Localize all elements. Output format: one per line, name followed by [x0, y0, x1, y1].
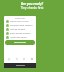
staticText: CONTINUE	[14, 41, 26, 44]
button[interactable]: Alerts	[20, 55, 27, 62]
button[interactable]: Enter phone number	[6, 31, 36, 35]
button[interactable]: CONTINUE	[5, 40, 35, 45]
staticText: Checklist	[4, 16, 36, 19]
staticText: Tiny checks first	[0, 6, 64, 10]
staticText: Check your ID card	[10, 20, 29, 23]
staticText: Confirm home address	[10, 24, 33, 27]
staticText: Accept the terms	[10, 36, 27, 39]
button[interactable]: Search	[13, 55, 20, 62]
button[interactable]: Confirm home address	[6, 23, 36, 27]
button[interactable]: Upload a photo	[6, 27, 36, 31]
button[interactable]: Profile	[28, 55, 35, 62]
staticText: Are you ready?	[0, 2, 64, 6]
button[interactable]: Home	[5, 55, 12, 62]
button[interactable]: Accept the terms	[6, 35, 36, 39]
staticText: Enter phone number	[10, 32, 31, 35]
staticText: Upload a photo	[10, 28, 26, 31]
button[interactable]: Check your ID card	[6, 19, 36, 23]
